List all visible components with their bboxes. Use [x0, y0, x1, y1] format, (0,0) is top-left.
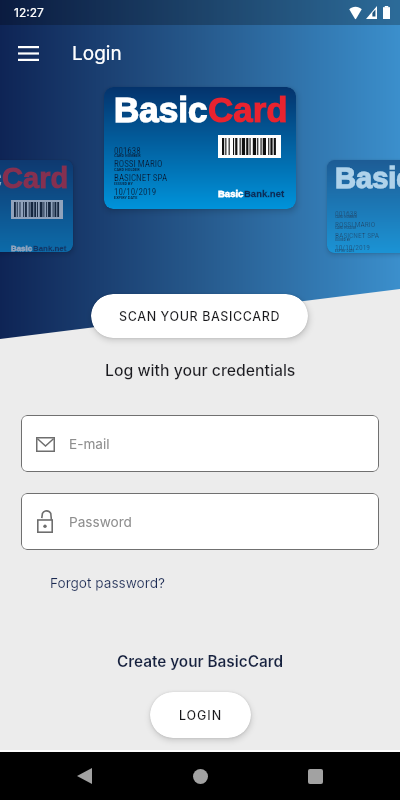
staticText: E-mail	[69, 436, 110, 452]
staticText: Log with your credentials	[105, 361, 296, 380]
staticText: CARD HOLDER	[335, 226, 357, 230]
staticText: CARD HOLDER	[114, 167, 140, 172]
staticText: Card	[208, 90, 288, 129]
staticText: Password	[69, 514, 132, 530]
staticText: EXPIRY DATE	[114, 195, 138, 200]
staticText: Forgot password?	[50, 575, 165, 591]
staticText: Login	[72, 42, 122, 65]
staticText: BASICNET SPA	[114, 173, 168, 184]
staticText: ISSUED BY	[335, 238, 351, 242]
staticText: Basic	[11, 244, 33, 252]
staticText: Basic	[0, 162, 2, 194]
button[interactable]: LOGIN	[150, 692, 251, 738]
staticText: ROSSI MARIO	[114, 159, 163, 170]
staticText: LOGIN	[179, 708, 223, 723]
button[interactable]: Create your BasicCard	[117, 652, 283, 671]
staticText: CARD NUMBER	[335, 215, 358, 219]
staticText: EXPIRY DATE	[335, 249, 355, 253]
staticText: Card	[2, 162, 69, 194]
staticText: 12:27	[14, 5, 44, 20]
staticText: 001638	[335, 209, 358, 218]
staticText: Bank.net	[33, 244, 67, 252]
button[interactable]: Home	[176, 752, 224, 800]
staticText: 001638	[114, 146, 141, 157]
button[interactable]: Back	[60, 752, 108, 800]
staticText: BASICNET SPA	[335, 231, 380, 240]
button[interactable]: Open navigation menu	[4, 29, 52, 77]
button[interactable]: Forgot password?	[50, 575, 165, 591]
button[interactable]: E-mail	[21, 415, 379, 472]
staticText: Create your BasicCard	[117, 652, 283, 671]
staticText: ISSUED BY	[114, 181, 133, 186]
button[interactable]: SCAN YOUR BASICCARD	[91, 294, 308, 338]
button[interactable]: Password	[21, 493, 379, 550]
staticText: CARD NUMBER	[114, 153, 141, 158]
staticText: Bank.net	[244, 188, 285, 199]
staticText: SCAN YOUR BASICCARD	[119, 309, 281, 324]
staticText: 10/10/2019	[114, 187, 157, 198]
staticText: Basic	[335, 162, 400, 194]
staticText: ROSSI MARIO	[335, 220, 376, 229]
staticText: 10/10/2019	[335, 243, 371, 252]
staticText: Basic	[218, 188, 244, 199]
button[interactable]: Recent apps	[291, 752, 339, 800]
staticText: Basic	[114, 90, 208, 129]
